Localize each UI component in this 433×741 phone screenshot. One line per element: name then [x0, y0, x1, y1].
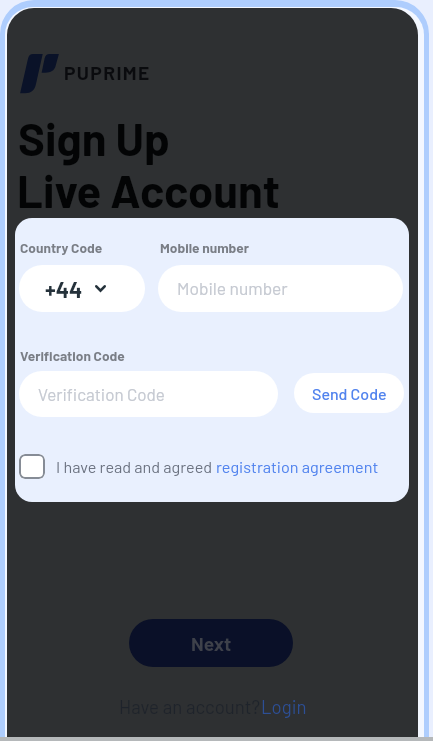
staticText: Country Code — [20, 239, 103, 255]
button[interactable]: Next — [129, 619, 293, 667]
staticText: Verification Code — [38, 384, 165, 404]
staticText: Mobile number — [160, 239, 249, 255]
staticText: Have an account? — [119, 695, 261, 717]
staticText: Mobile number — [177, 278, 288, 299]
staticText: PUPRIME — [64, 61, 151, 84]
staticText: Send Code — [312, 384, 387, 403]
button[interactable]: Send Code — [294, 373, 404, 413]
button[interactable]: Mobile number — [158, 265, 403, 312]
staticText: +44 — [45, 276, 83, 302]
staticText: Verification Code — [20, 347, 125, 363]
staticText: Live Account — [17, 163, 280, 217]
button[interactable]: Select country code — [19, 265, 145, 312]
button[interactable]: I have read and agreed — [19, 454, 379, 479]
staticText: registration agreement — [216, 457, 379, 476]
staticText: I have read and agreed — [56, 457, 216, 476]
button[interactable]: Verification Code — [19, 371, 278, 417]
staticText: Sign Up — [18, 111, 170, 165]
button[interactable]: Login — [261, 695, 307, 717]
staticText: Next — [191, 632, 232, 655]
